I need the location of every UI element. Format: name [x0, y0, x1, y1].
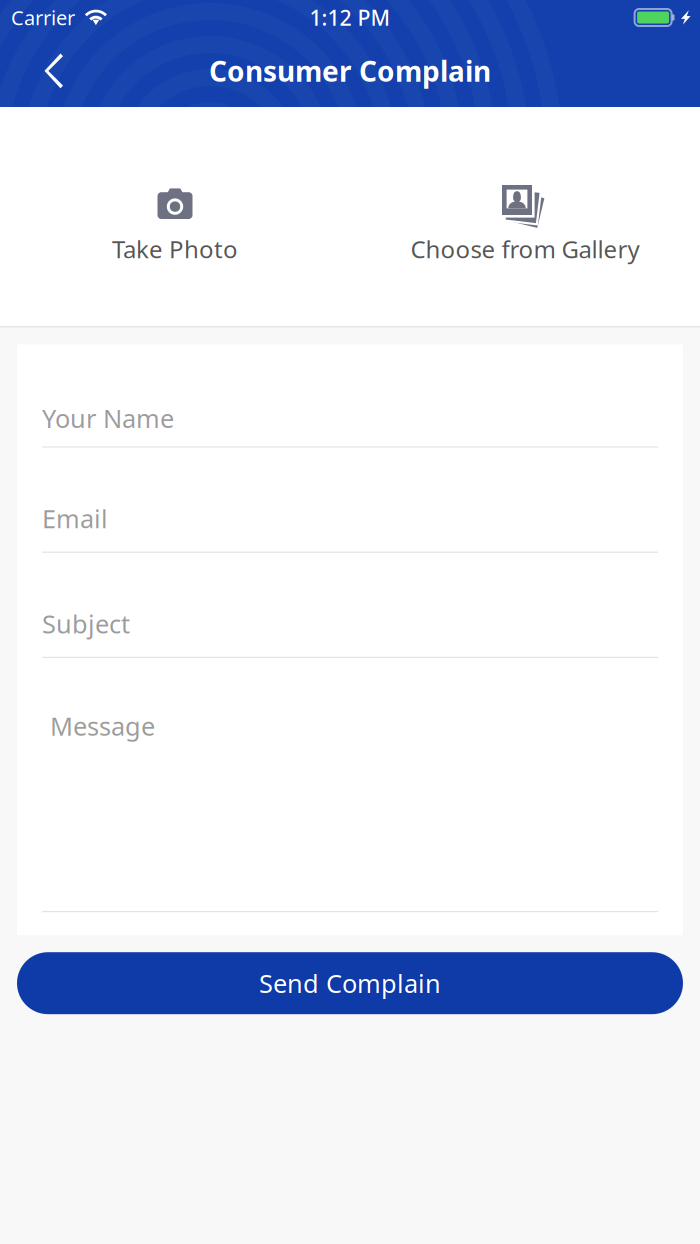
- staticText: Choose from Gallery: [410, 233, 639, 265]
- staticText: Message: [50, 709, 155, 743]
- staticText: Your Name: [42, 401, 174, 435]
- staticText: Take Photo: [112, 233, 238, 265]
- staticText: Carrier: [11, 4, 75, 31]
- staticText: 1:12 PM: [309, 3, 390, 32]
- button[interactable]: Take Photo: [0, 107, 350, 326]
- staticText: Send Complain: [259, 966, 441, 1000]
- button[interactable]: Send Complain: [17, 952, 683, 1014]
- button[interactable]: Back: [0, 37, 108, 105]
- staticText: Subject: [42, 607, 130, 640]
- staticText: Consumer Complain: [209, 52, 491, 90]
- button[interactable]: Choose from Gallery: [350, 107, 700, 326]
- staticText: Email: [42, 502, 108, 535]
